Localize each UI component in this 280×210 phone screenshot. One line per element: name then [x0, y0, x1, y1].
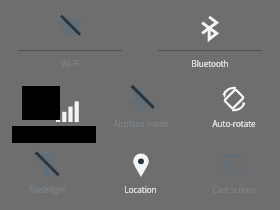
staticText: Cast screen: [212, 184, 256, 195]
button[interactable]: Cast screen: [187, 144, 280, 210]
button[interactable]: Location: [94, 144, 187, 210]
button[interactable]: Auto-rotate: [187, 78, 280, 144]
staticText: Location: [124, 184, 157, 195]
button[interactable]: Airplane mode: [94, 78, 187, 144]
staticText: Bluetooth: [191, 58, 229, 69]
button[interactable]: Wi-Fi: [0, 0, 140, 78]
button[interactable]: Flashlight: [0, 144, 94, 210]
staticText: Auto-rotate: [212, 118, 256, 129]
button[interactable]: Mobile data: [0, 78, 94, 144]
button[interactable]: Bluetooth: [140, 0, 280, 78]
staticText: Wi-Fi: [61, 58, 80, 69]
staticText: Airplane mode: [113, 118, 169, 129]
staticText: Flashlight: [29, 184, 66, 195]
